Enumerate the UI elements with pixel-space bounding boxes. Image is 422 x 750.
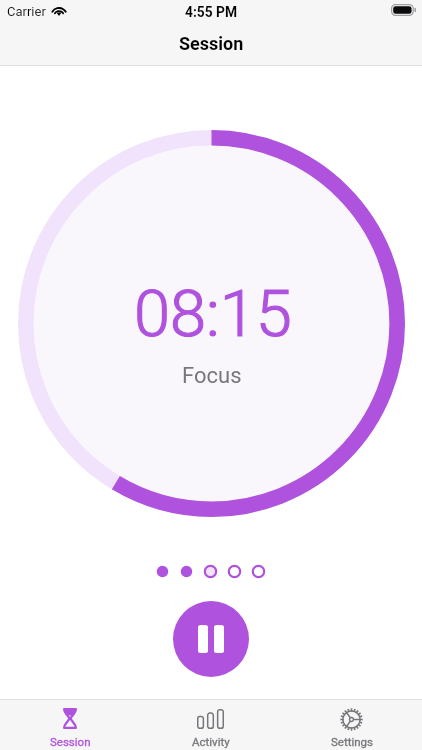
staticText: 08:15 xyxy=(134,276,292,352)
staticText: Settings xyxy=(331,735,373,748)
button[interactable]: Settings xyxy=(281,699,422,750)
button[interactable]: Activity xyxy=(140,699,281,750)
staticText: 4:55 PM xyxy=(185,4,238,20)
staticText: Session xyxy=(50,735,91,748)
button[interactable]: Pause xyxy=(173,601,249,677)
button[interactable]: Session xyxy=(0,699,140,750)
staticText: Activity xyxy=(192,735,230,748)
staticText: 08:15 xyxy=(134,276,292,352)
staticText: Session xyxy=(50,735,91,748)
staticText: Focus xyxy=(182,363,242,389)
staticText: Session xyxy=(179,33,244,54)
staticText: Activity xyxy=(192,735,230,748)
staticText: Settings xyxy=(331,735,373,748)
staticText: Carrier xyxy=(7,4,46,19)
